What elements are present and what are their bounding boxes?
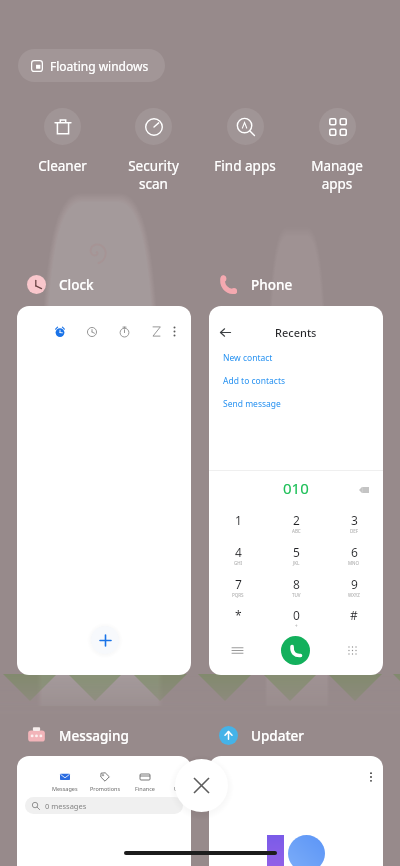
- button[interactable]: Add alarm: [91, 626, 119, 654]
- button[interactable]: Send message: [223, 398, 281, 410]
- button[interactable]: Messages: [45, 772, 85, 792]
- other: More options: [169, 326, 180, 337]
- staticText: 3: [351, 512, 358, 528]
- other: Back: [220, 327, 231, 338]
- button[interactable]: Add to contacts: [223, 375, 286, 387]
- button[interactable]: Manage apps: [291, 108, 383, 193]
- staticText: +: [295, 623, 298, 629]
- button[interactable]: Updater: [219, 726, 305, 745]
- button[interactable]: Promotions: [85, 772, 125, 792]
- button[interactable]: Updates: [165, 772, 191, 792]
- button[interactable]: Call: [281, 636, 310, 665]
- button[interactable]: 1: [209, 512, 267, 538]
- button[interactable]: More options: [17, 306, 191, 675]
- button[interactable]: Messaging: [27, 726, 129, 745]
- staticText: GHI: [234, 560, 243, 566]
- button[interactable]: Back: [209, 306, 383, 675]
- button[interactable]: More options: [209, 756, 383, 866]
- button[interactable]: Find apps: [199, 108, 291, 175]
- other: Keypad: [347, 645, 358, 656]
- other: More options: [366, 772, 376, 782]
- staticText: Manage apps: [311, 157, 363, 193]
- staticText: 7: [235, 576, 242, 592]
- button[interactable]: 5: [267, 544, 325, 570]
- staticText: 4: [235, 544, 242, 560]
- staticText: 0 messages: [45, 801, 87, 811]
- button[interactable]: 4: [209, 544, 267, 570]
- staticText: JKL: [293, 560, 300, 566]
- button[interactable]: 2: [267, 512, 325, 538]
- staticText: DEF: [350, 528, 359, 534]
- staticText: Floating windows: [50, 58, 149, 74]
- staticText: 8: [293, 576, 300, 592]
- staticText: Updates: [174, 785, 191, 792]
- button[interactable]: Clock: [27, 275, 94, 294]
- button[interactable]: *: [209, 607, 267, 633]
- staticText: TUV: [292, 592, 301, 598]
- button[interactable]: Security scan: [108, 108, 199, 193]
- staticText: Updater: [251, 727, 305, 745]
- staticText: Clock: [59, 276, 94, 294]
- staticText: ABC: [292, 528, 301, 534]
- staticText: Finance: [135, 785, 155, 792]
- staticText: Find apps: [214, 157, 276, 175]
- staticText: Phone: [251, 276, 293, 294]
- staticText: 010: [283, 478, 309, 498]
- button[interactable]: 0: [267, 607, 325, 633]
- staticText: 1: [235, 512, 242, 528]
- button[interactable]: 7: [209, 576, 267, 602]
- button[interactable]: 9: [325, 576, 383, 602]
- button[interactable]: Floating windows: [18, 49, 165, 82]
- staticText: WXYZ: [348, 592, 360, 598]
- staticText: 0: [293, 607, 300, 623]
- button[interactable]: Phone: [219, 275, 293, 294]
- staticText: 2: [293, 512, 300, 528]
- button[interactable]: 0 messages: [25, 797, 183, 814]
- other: Backspace: [359, 485, 369, 495]
- staticText: PQRS: [232, 592, 244, 598]
- staticText: #: [350, 607, 358, 623]
- button[interactable]: Messages: [17, 756, 191, 866]
- staticText: *: [235, 607, 242, 623]
- button[interactable]: 6: [325, 544, 383, 570]
- staticText: Promotions: [90, 785, 121, 792]
- staticText: 9: [351, 576, 358, 592]
- button[interactable]: Cleaner: [17, 108, 108, 175]
- staticText: 5: [293, 544, 300, 560]
- staticText: Messaging: [59, 727, 129, 745]
- button[interactable]: New contact: [223, 352, 273, 364]
- other: Menu: [232, 645, 243, 656]
- button[interactable]: 8: [267, 576, 325, 602]
- staticText: Recents: [275, 325, 317, 340]
- button[interactable]: 3: [325, 512, 383, 538]
- staticText: 6: [351, 544, 358, 560]
- staticText: MNO: [348, 560, 360, 566]
- staticText: Security scan: [128, 157, 179, 193]
- button[interactable]: #: [325, 607, 383, 633]
- staticText: Messages: [52, 785, 78, 792]
- button[interactable]: Close: [175, 759, 228, 812]
- staticText: Cleaner: [38, 157, 87, 175]
- button[interactable]: Finance: [125, 772, 165, 792]
